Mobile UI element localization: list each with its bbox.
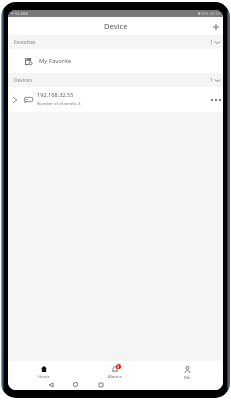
button[interactable]: 192.168.32.55 [8, 87, 223, 112]
button[interactable]: Me [151, 361, 223, 379]
staticText: Number of channels: 4 [37, 101, 81, 107]
staticText: 192.168.32.55 [37, 91, 74, 99]
button[interactable]: Home [70, 379, 81, 390]
staticText: Device [104, 21, 128, 31]
button[interactable]: Add device [209, 20, 222, 33]
staticText: 1 [210, 39, 213, 46]
staticText: Home [38, 374, 50, 380]
staticText: Alarms [108, 374, 122, 380]
button[interactable]: 2 [79, 361, 151, 379]
button[interactable]: More options [208, 92, 223, 107]
button[interactable]: Devices [8, 73, 223, 87]
staticText: Me [184, 375, 191, 381]
button[interactable]: Recent apps [95, 379, 106, 390]
staticText: 1 [210, 77, 213, 84]
staticText: 52.6KA [15, 11, 28, 16]
button[interactable]: Favorites [8, 35, 223, 49]
button[interactable]: Back [45, 379, 56, 390]
button[interactable]: My Favorite [8, 49, 223, 73]
staticText: 2 [117, 364, 120, 369]
staticText: Devices [14, 77, 32, 84]
staticText: Favorites [14, 39, 36, 46]
staticText: 09:16 [210, 11, 220, 16]
button[interactable]: Home [8, 361, 79, 379]
staticText: 89% [201, 11, 209, 16]
staticText: My Favorite [39, 57, 72, 65]
